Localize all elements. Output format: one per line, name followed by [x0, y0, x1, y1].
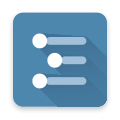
button[interactable]: Settings [13, 13, 107, 107]
